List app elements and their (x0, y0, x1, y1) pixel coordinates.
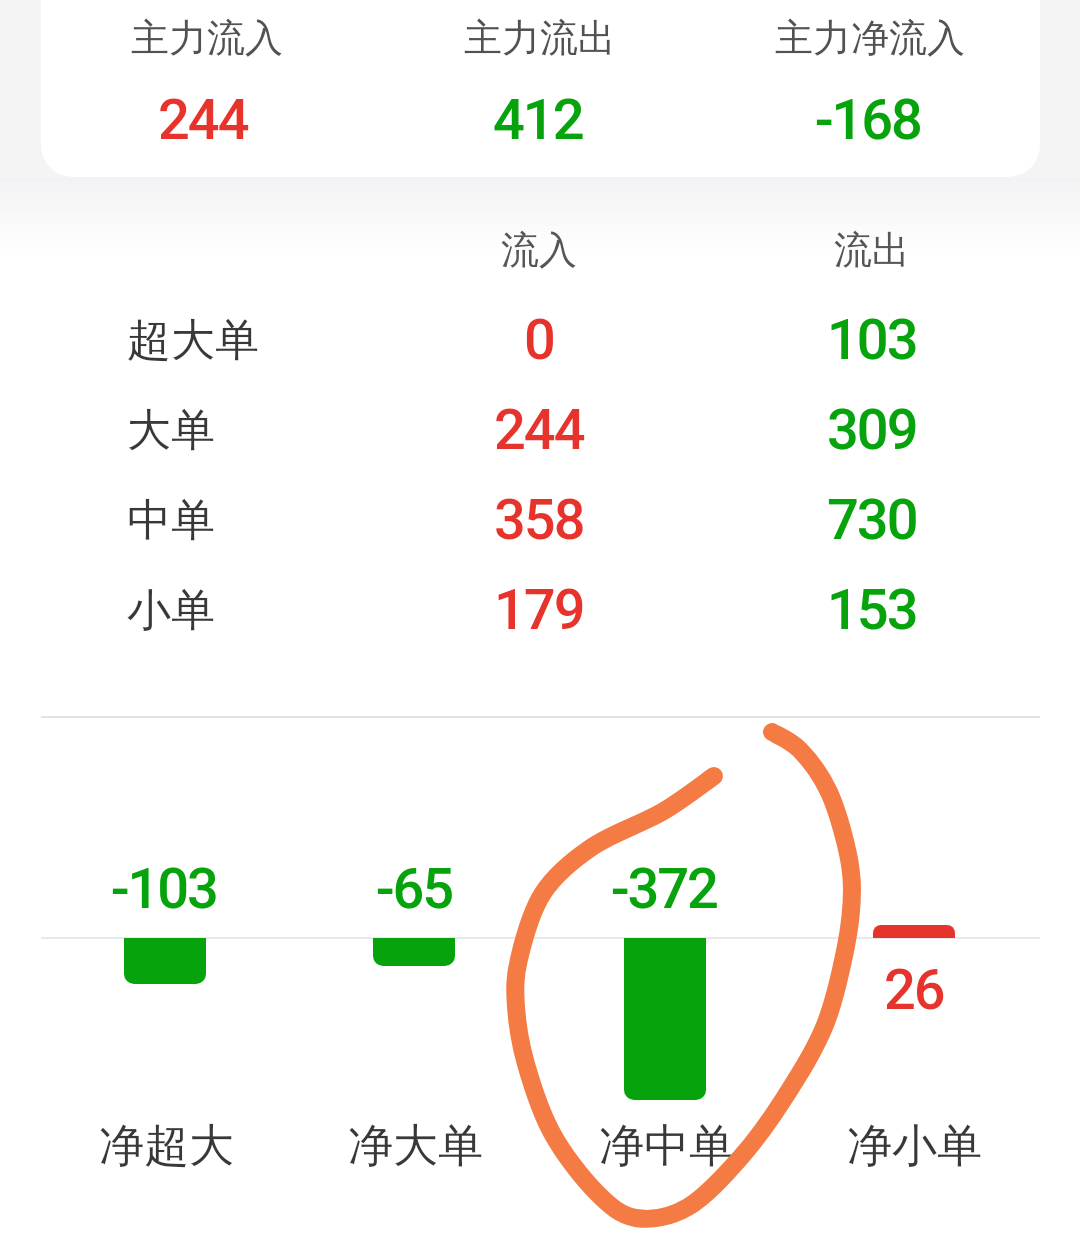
staticText: 244 (158, 87, 248, 153)
staticText: 主力流出 (464, 14, 616, 62)
staticText: -372 (611, 856, 717, 922)
staticText: 净大单 (348, 1118, 483, 1175)
staticText: -168 (815, 87, 921, 153)
staticText: 净小单 (847, 1118, 982, 1175)
staticText: 309 (827, 397, 917, 463)
staticText: 净超大 (99, 1118, 234, 1175)
staticText: -65 (376, 856, 453, 922)
staticText: 730 (827, 487, 917, 553)
staticText: 244 (494, 397, 584, 463)
staticText: 0 (524, 307, 554, 373)
button[interactable] (41, 0, 1040, 177)
staticText: 流出 (834, 226, 910, 274)
staticText: 主力净流入 (775, 14, 965, 62)
staticText: 26 (884, 957, 944, 1023)
staticText: 179 (494, 577, 584, 643)
staticText: 流入 (501, 226, 577, 274)
staticText: 小单 (127, 583, 215, 638)
staticText: 大单 (127, 403, 215, 458)
staticText: 103 (827, 307, 917, 373)
staticText: 净中单 (599, 1118, 734, 1175)
staticText: 超大单 (127, 313, 259, 368)
staticText: 358 (494, 487, 584, 553)
staticText: -103 (111, 856, 217, 922)
staticText: 中单 (127, 493, 215, 548)
staticText: 主力流入 (131, 14, 283, 62)
staticText: 412 (493, 87, 583, 153)
staticText: 153 (827, 577, 917, 643)
